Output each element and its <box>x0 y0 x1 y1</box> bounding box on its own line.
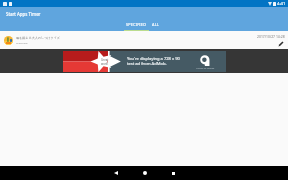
button[interactable]: Back <box>101 166 130 180</box>
button[interactable]: Edit <box>277 40 285 48</box>
staticText: 4:41 <box>277 1 286 7</box>
staticText: AdMob by Google <box>196 67 215 70</box>
button[interactable]: SPECIFIED <box>124 22 149 31</box>
button[interactable]: Great work! <box>0 49 288 73</box>
button[interactable]: Recent apps <box>159 166 188 180</box>
staticText: ALL <box>152 22 160 27</box>
staticText: 2017/10/27 14:28 <box>257 34 285 39</box>
button[interactable]: Home <box>130 166 159 180</box>
staticText: 脳を鍛える大人のしつけクイズ <box>16 36 61 40</box>
staticText: You're displaying a 728 x 90 test ad fro… <box>127 56 180 66</box>
button[interactable]: 脳を鍛える大人のしつけクイズ <box>0 31 288 49</box>
staticText: Start Apps Timer <box>6 11 41 17</box>
button[interactable]: ALL <box>149 22 163 31</box>
staticText: SPECIFIED <box>16 41 28 44</box>
staticText: SPECIFIED <box>126 22 147 27</box>
staticText: Great work! <box>101 58 109 65</box>
